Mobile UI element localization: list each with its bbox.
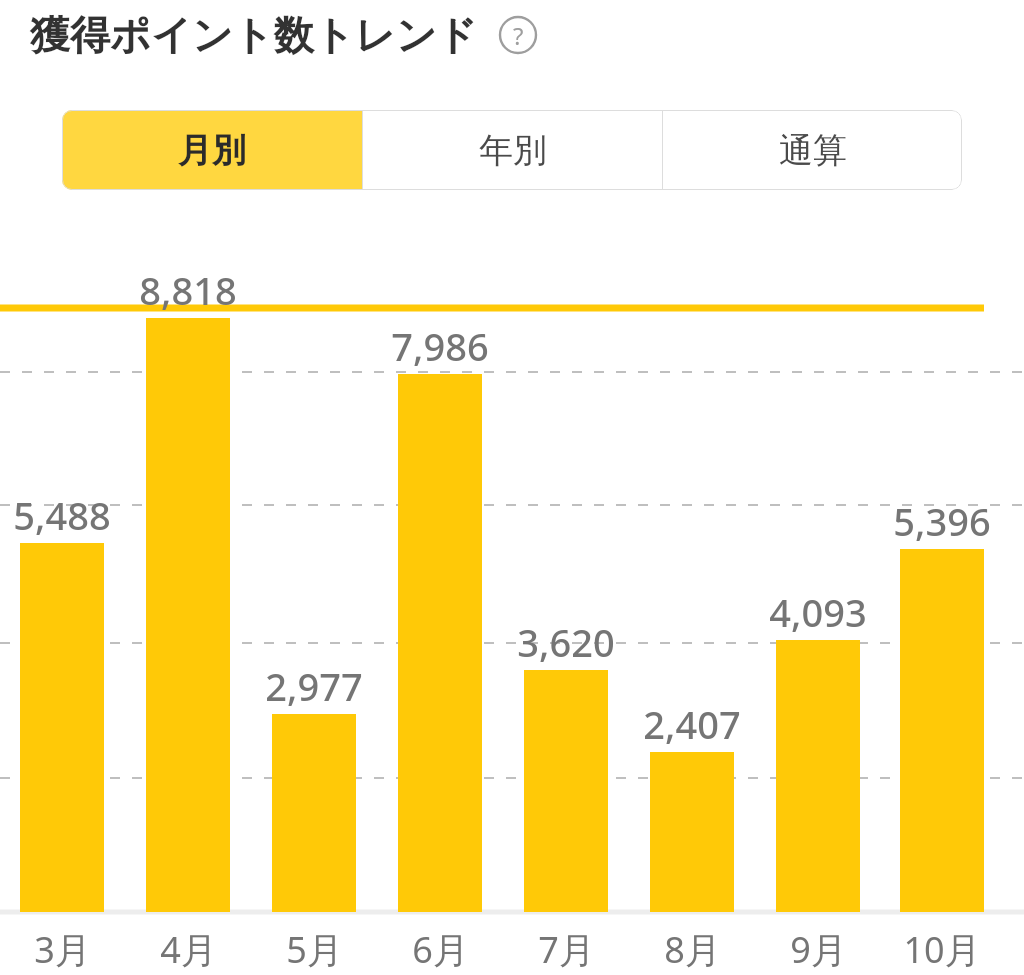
staticText: 8月 bbox=[664, 925, 721, 973]
staticText: 7,986 bbox=[391, 320, 489, 370]
staticText: ? bbox=[513, 19, 524, 52]
button[interactable]: 年別 bbox=[363, 110, 662, 190]
staticText: 8,818 bbox=[139, 264, 237, 314]
staticText: 6月 bbox=[412, 925, 469, 973]
staticText: 5,396 bbox=[893, 495, 991, 545]
staticText: 4,093 bbox=[769, 586, 867, 636]
button[interactable]: 2,407 bbox=[607, 698, 777, 748]
button[interactable]: ヘルプ bbox=[496, 13, 540, 57]
staticText: 5月 bbox=[286, 925, 343, 973]
staticText: 獲得ポイント数トレンド bbox=[30, 10, 478, 60]
staticText: 5,488 bbox=[13, 489, 111, 539]
staticText: 7月 bbox=[538, 925, 595, 973]
staticText: 3月 bbox=[34, 925, 91, 973]
staticText: 3,620 bbox=[517, 616, 615, 666]
button[interactable]: 3,620 bbox=[481, 616, 651, 666]
button[interactable]: 5,488 bbox=[0, 489, 147, 539]
button[interactable]: 月別 bbox=[62, 110, 362, 190]
button[interactable]: 8,818 bbox=[103, 264, 273, 314]
button[interactable]: 4,093 bbox=[733, 586, 903, 636]
button[interactable]: 5,396 bbox=[857, 495, 1024, 545]
staticText: 通算 bbox=[779, 129, 847, 172]
staticText: 4月 bbox=[160, 925, 217, 973]
button[interactable]: 7,986 bbox=[355, 320, 525, 370]
staticText: 9月 bbox=[790, 925, 847, 973]
button[interactable]: 2,977 bbox=[229, 660, 399, 710]
staticText: 2,407 bbox=[643, 698, 741, 748]
staticText: 10月 bbox=[903, 925, 981, 973]
staticText: 月別 bbox=[178, 129, 246, 172]
button[interactable]: 通算 bbox=[663, 110, 962, 190]
staticText: 2,977 bbox=[265, 660, 363, 710]
staticText: 年別 bbox=[479, 129, 547, 172]
